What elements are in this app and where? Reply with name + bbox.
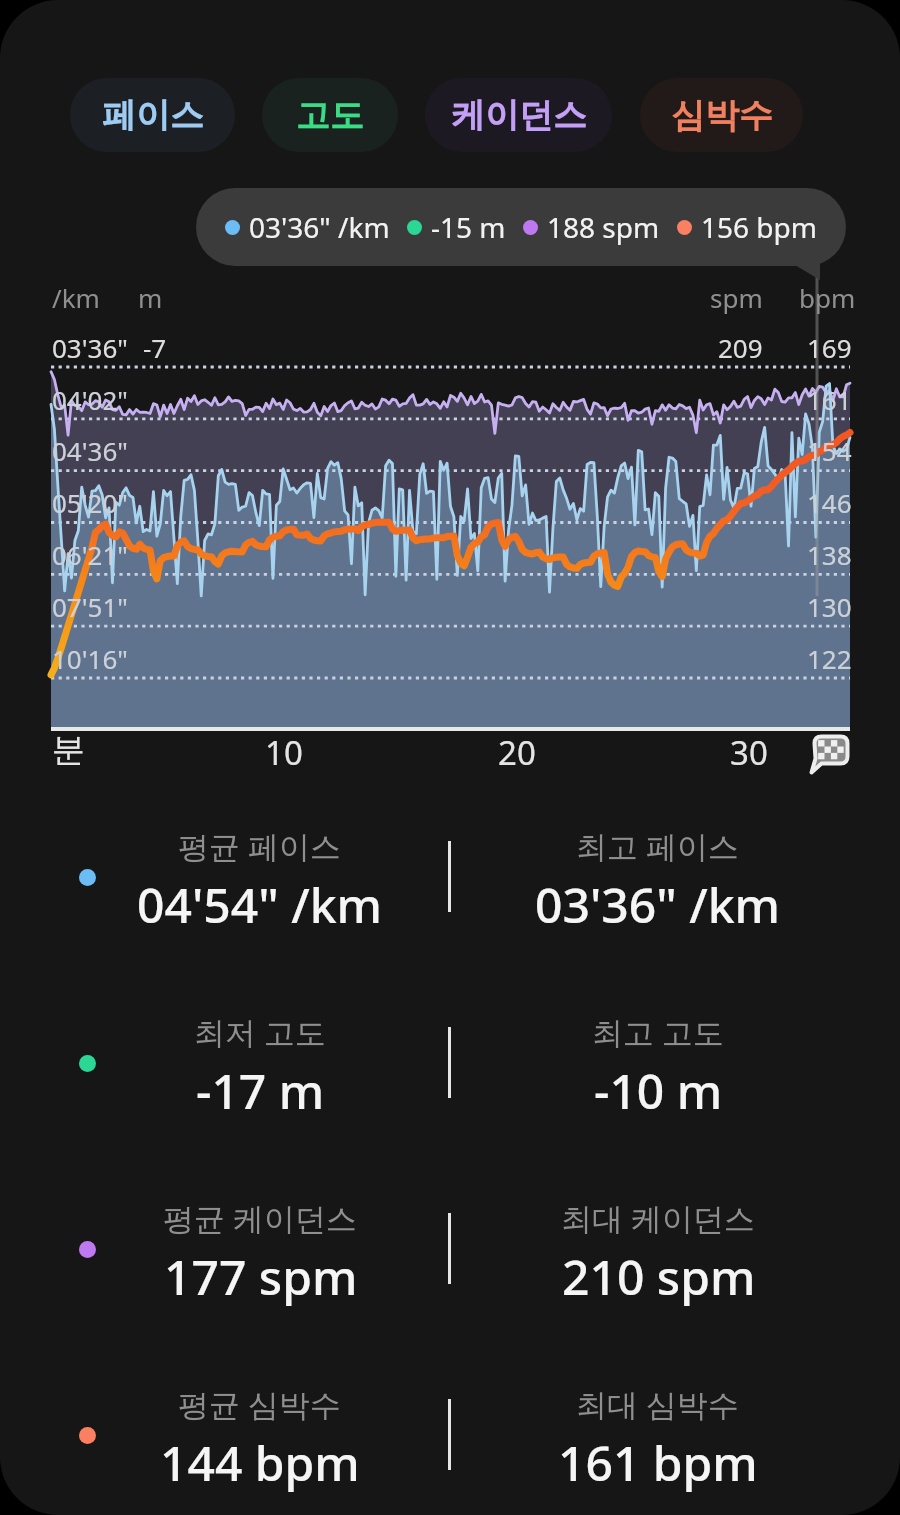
staticText: 페이스 [102, 94, 204, 137]
staticText: 156 bpm [701, 208, 817, 246]
staticText: 평균 케이던스 [163, 1197, 358, 1239]
staticText: 고도 [296, 94, 364, 137]
staticText: 10'16" [52, 641, 128, 676]
staticText: 177 spm [164, 1244, 358, 1309]
staticText: 03'36" /km [535, 872, 781, 937]
staticText: 최고 고도 [592, 1011, 725, 1053]
button[interactable]: 심박수 [640, 78, 803, 152]
staticText: bpm [799, 280, 856, 315]
button[interactable]: 평균 페이스 [0, 784, 900, 970]
staticText: 04'54" /km [137, 872, 383, 937]
staticText: -7 [143, 330, 167, 365]
staticText: 209 [718, 330, 763, 365]
staticText: 04'36" [52, 433, 128, 468]
staticText: 최고 페이스 [576, 825, 740, 867]
staticText: /km [52, 280, 100, 315]
staticText: 최대 케이던스 [561, 1197, 756, 1239]
staticText: 161 bpm [558, 1430, 758, 1495]
staticText: 138 [807, 537, 852, 572]
staticText: -17 m [196, 1058, 325, 1123]
button[interactable]: 평균 심박수 [0, 1342, 900, 1515]
button[interactable]: 케이던스 [425, 78, 612, 152]
staticText: 케이던스 [451, 94, 587, 137]
button[interactable]: 03'36" /km [196, 188, 846, 266]
staticText: 210 spm [562, 1244, 756, 1309]
staticText: 분 [52, 729, 85, 771]
button[interactable]: 최저 고도 [0, 970, 900, 1156]
button[interactable]: 고도 [262, 78, 398, 152]
staticText: 최저 고도 [194, 1011, 327, 1053]
staticText: 07'51" [52, 589, 128, 624]
staticText: -15 m [431, 208, 506, 246]
staticText: 30 [730, 730, 768, 775]
staticText: 169 [807, 330, 852, 365]
staticText: 122 [807, 641, 852, 676]
staticText: 20 [498, 730, 536, 775]
staticText: spm [710, 280, 763, 315]
staticText: 144 bpm [160, 1430, 360, 1495]
staticText: 154 [807, 433, 852, 468]
staticText: -10 m [594, 1058, 723, 1123]
staticText: 평균 페이스 [178, 825, 342, 867]
staticText: 188 spm [547, 208, 660, 246]
staticText: 평균 심박수 [178, 1383, 342, 1425]
staticText: 10 [265, 730, 303, 775]
button[interactable]: 페이스 [70, 78, 235, 152]
staticText: 03'36" /km [249, 208, 390, 246]
staticText: 심박수 [671, 94, 773, 137]
staticText: 05'20" [52, 485, 128, 520]
staticText: 161 [807, 382, 852, 417]
staticText: m [138, 280, 163, 315]
staticText: 04'02" [52, 382, 128, 417]
staticText: 146 [807, 485, 852, 520]
staticText: 최대 심박수 [576, 1383, 740, 1425]
staticText: 130 [807, 589, 852, 624]
button[interactable]: 평균 케이던스 [0, 1156, 900, 1342]
staticText: 06'21" [52, 537, 128, 572]
staticText: 03'36" [52, 330, 128, 365]
